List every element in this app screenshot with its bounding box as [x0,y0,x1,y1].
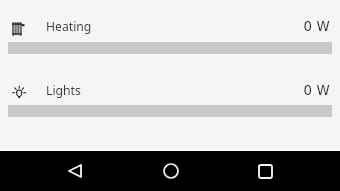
staticText: Lights [46,82,81,99]
button[interactable]: Heating [0,0,340,54]
staticText: 0 W [0,83,330,99]
button[interactable]: Home [123,151,218,191]
button[interactable]: Back [27,151,123,191]
staticText: Heating [46,18,92,35]
button[interactable]: Recent apps [218,151,313,191]
other: Lights [12,86,26,100]
staticText: 0 W [0,19,330,35]
other: Heating [12,22,25,36]
button[interactable]: Lights [0,54,340,117]
